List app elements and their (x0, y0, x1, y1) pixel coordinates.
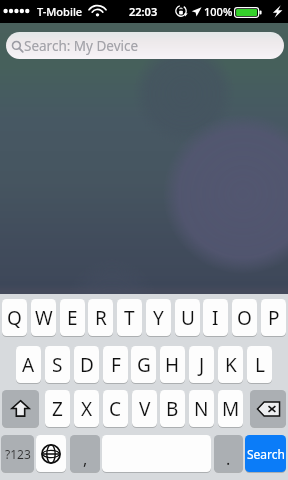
staticText: Z (52, 396, 63, 422)
staticText: 22:03 (129, 4, 158, 19)
staticText: I (212, 305, 219, 331)
staticText: N (194, 396, 209, 422)
staticText: Search (247, 446, 285, 462)
staticText: 100% (204, 4, 233, 19)
staticText: S (52, 352, 63, 378)
button[interactable]: B (160, 390, 185, 427)
button[interactable]: N (189, 390, 214, 427)
button[interactable]: Period (214, 435, 243, 472)
button[interactable]: Change keyboard (36, 435, 66, 472)
staticText: C (109, 396, 122, 422)
button[interactable]: U (175, 299, 200, 336)
button[interactable]: J (189, 346, 214, 383)
staticText: R (95, 305, 107, 331)
staticText: H (165, 352, 180, 378)
button[interactable]: H (160, 346, 185, 383)
staticText: Search: My Device (24, 37, 139, 55)
staticText: T-Mobile (37, 4, 83, 19)
button[interactable]: Comma (70, 435, 100, 472)
button[interactable]: Search: My Device (6, 32, 284, 59)
staticText: X (81, 396, 93, 422)
button[interactable]: Q (2, 299, 27, 336)
staticText: ?123 (5, 446, 31, 462)
button[interactable]: P (261, 299, 286, 336)
button[interactable]: K (218, 346, 243, 383)
staticText: L (255, 352, 265, 378)
button[interactable]: L (247, 346, 272, 383)
button[interactable]: M (218, 390, 243, 427)
staticText: O (237, 305, 252, 331)
staticText: Y (153, 305, 164, 331)
button[interactable]: R (88, 299, 113, 336)
staticText: B (166, 396, 179, 422)
button[interactable]: V (132, 390, 157, 427)
button[interactable]: W (31, 299, 56, 336)
button[interactable]: Shift (2, 390, 39, 427)
staticText: P (268, 305, 280, 331)
button[interactable]: E (60, 299, 85, 336)
button[interactable]: Y (146, 299, 171, 336)
staticText: . (226, 448, 231, 470)
button[interactable]: G (131, 346, 156, 383)
staticText: M (222, 396, 240, 422)
button[interactable]: Z (45, 390, 70, 427)
staticText: W (35, 305, 53, 331)
button[interactable]: S (45, 346, 70, 383)
staticText: E (67, 305, 78, 331)
staticText: A (22, 352, 35, 378)
staticText: J (199, 352, 205, 378)
staticText: , (83, 448, 88, 470)
staticText: D (80, 352, 94, 378)
button[interactable]: D (74, 346, 99, 383)
staticText: V (139, 396, 151, 422)
staticText: T (124, 305, 135, 331)
staticText: Q (7, 305, 22, 331)
button[interactable]: T (117, 299, 142, 336)
button[interactable]: F (103, 346, 128, 383)
button[interactable]: O (232, 299, 257, 336)
button[interactable]: X (74, 390, 99, 427)
button[interactable]: Search (245, 435, 286, 472)
button[interactable]: A (16, 346, 41, 383)
staticText: U (181, 305, 195, 331)
button[interactable]: C (103, 390, 128, 427)
button[interactable]: I (203, 299, 228, 336)
button[interactable]: Numbers (1, 435, 34, 472)
staticText: K (225, 352, 237, 378)
staticText: G (137, 352, 151, 378)
button[interactable]: Backspace (250, 390, 286, 427)
staticText: F (111, 352, 121, 378)
